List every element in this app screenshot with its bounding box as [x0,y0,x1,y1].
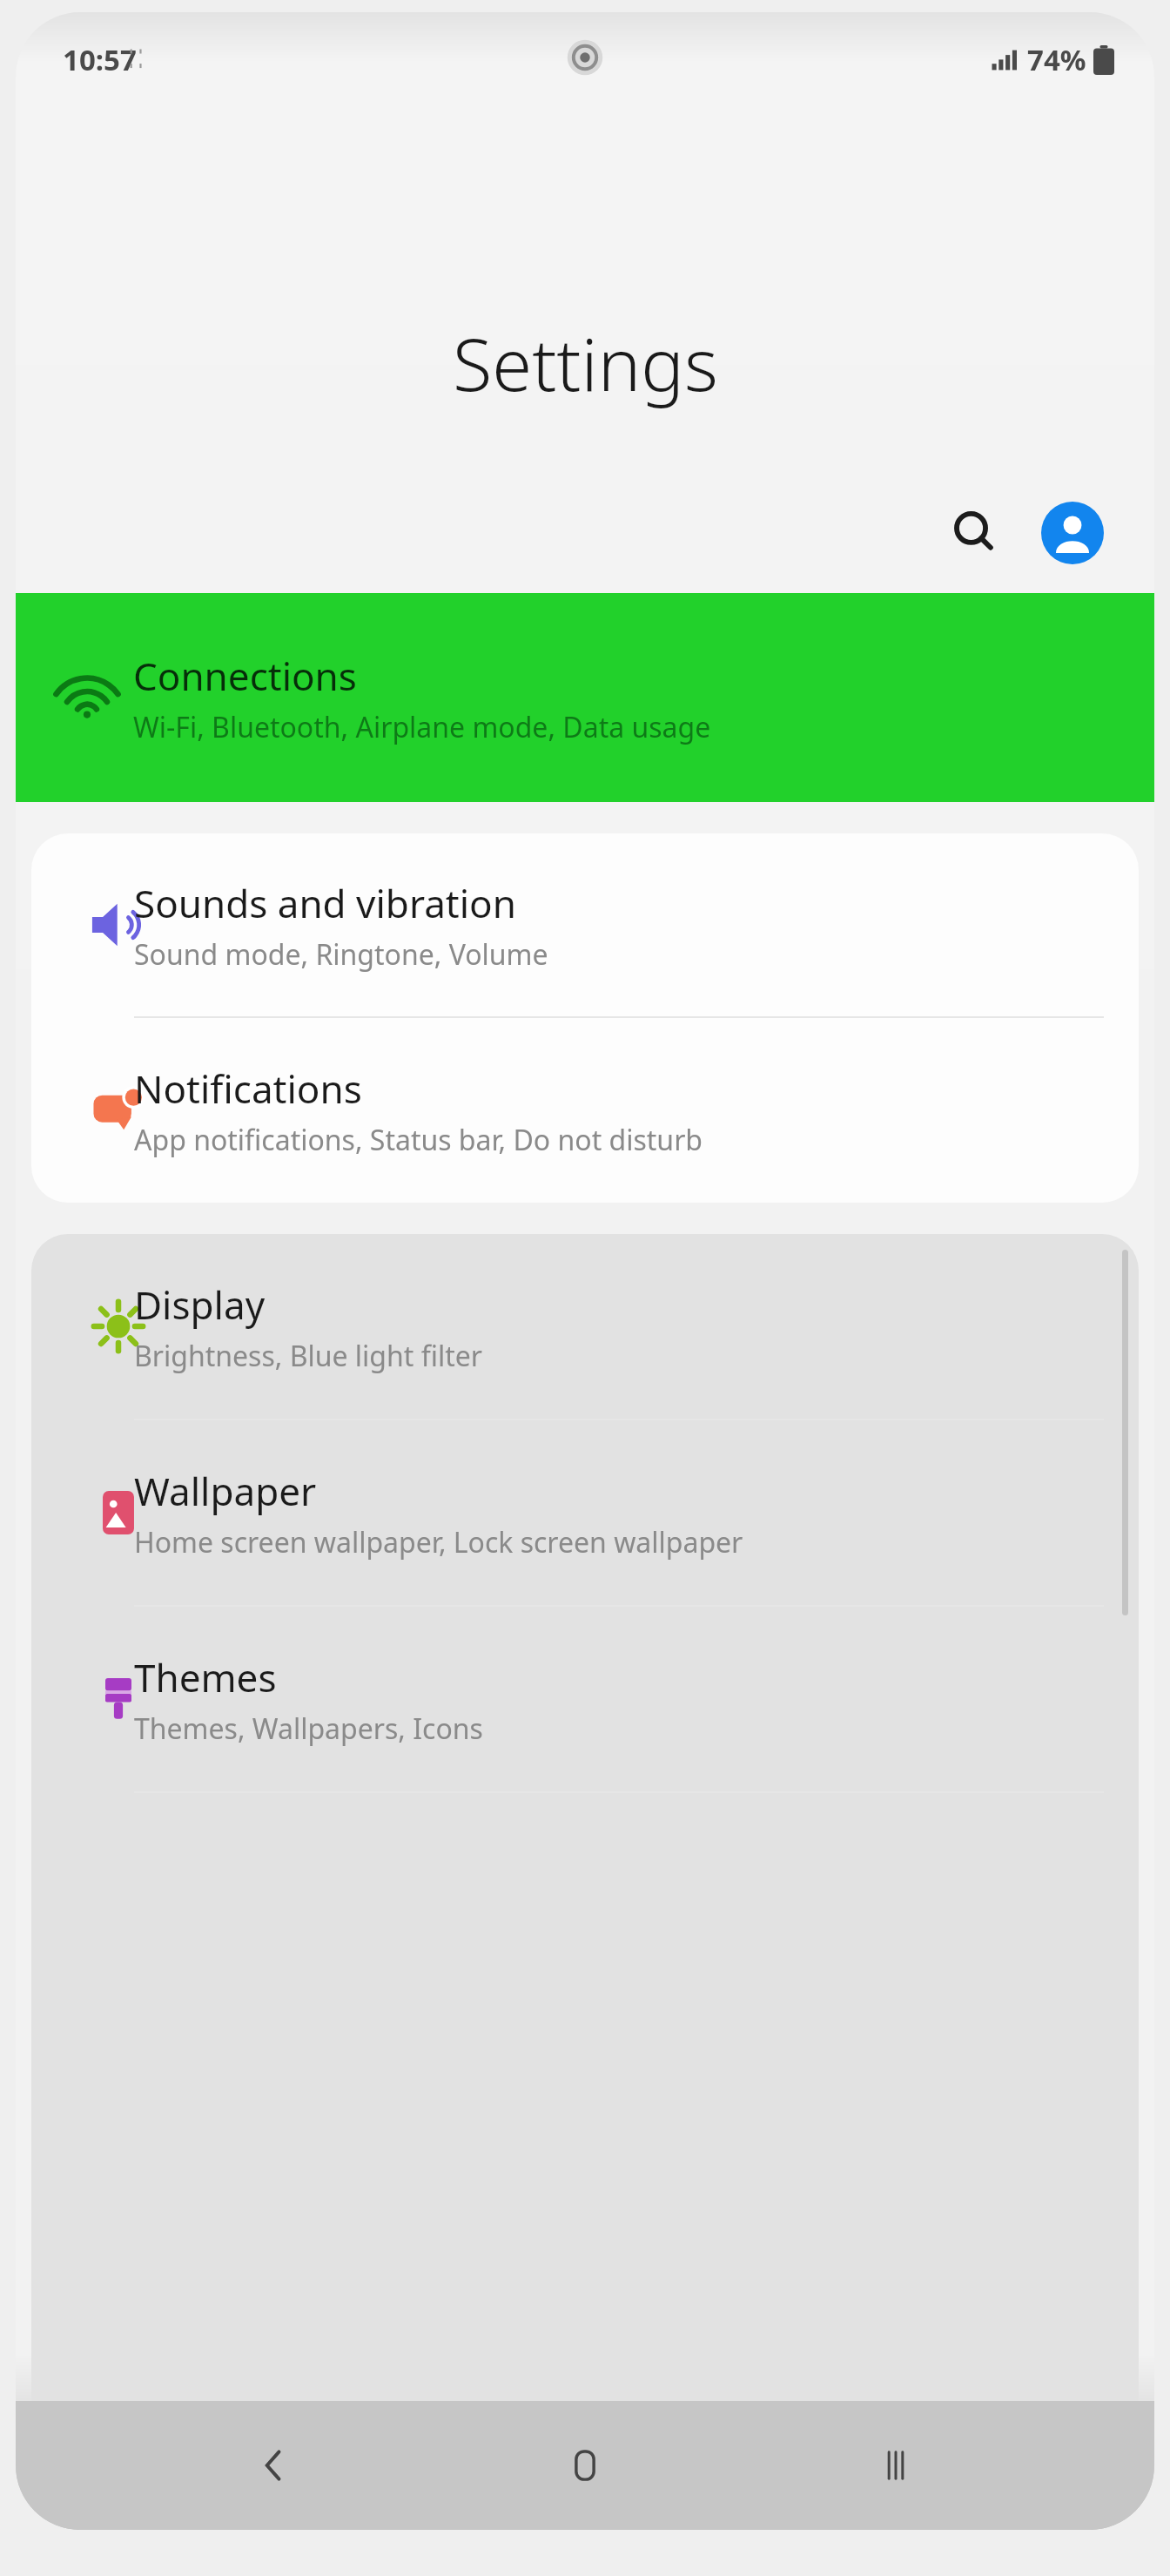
staticText: Themes [134,1651,277,1703]
button[interactable]: Display [31,1234,1139,1419]
staticText: Wallpaper [134,1465,317,1517]
staticText: 74% [1027,40,1086,79]
button[interactable]: Home [533,2413,637,2518]
button[interactable]: Sounds and vibration [31,833,1139,1016]
staticText: Sounds and vibration [134,877,516,929]
button[interactable]: Back [222,2413,326,2518]
staticText: Connections [133,650,357,702]
staticText: Home screen wallpaper, Lock screen wallp… [134,1523,743,1561]
staticText: Themes, Wallpapers, Icons [134,1709,483,1748]
button[interactable]: Connections [16,593,1154,802]
staticText: Wi-Fi, Bluetooth, Airplane mode, Data us… [133,708,711,746]
staticText: Settings [453,314,718,412]
button[interactable]: Account [1032,493,1113,573]
staticText: Notifications [134,1062,362,1115]
button[interactable]: Notifications [31,1018,1139,1203]
button[interactable]: Search [935,493,1015,573]
staticText: Display [134,1278,266,1331]
staticText: Sound mode, Ringtone, Volume [134,935,548,974]
staticText: 10:57 [63,40,137,79]
staticText: Brightness, Blue light filter [134,1337,483,1375]
button[interactable]: Recent apps [844,2413,948,2518]
staticText: App notifications, Status bar, Do not di… [134,1121,703,1159]
button[interactable]: Themes [31,1607,1139,1791]
button[interactable]: Wallpaper [31,1420,1139,1605]
